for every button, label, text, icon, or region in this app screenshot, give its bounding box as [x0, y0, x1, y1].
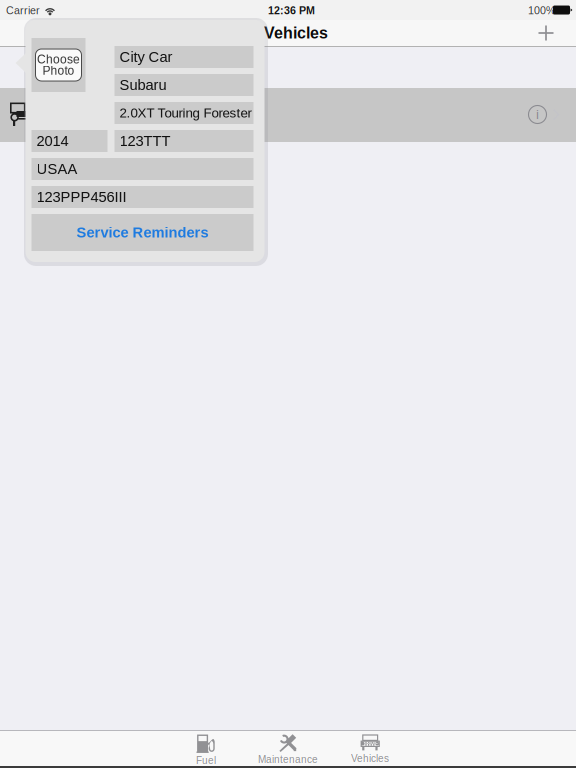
staticText: Fuel — [196, 755, 216, 766]
button[interactable]: Maintenance — [247, 731, 329, 766]
button[interactable]: Fuel — [165, 731, 247, 766]
staticText: Choose — [37, 53, 80, 66]
staticText: 100% — [528, 4, 555, 16]
staticText: 2.0XT Touring Forester — [119, 106, 251, 120]
staticText: City Car — [119, 49, 172, 65]
staticText: Vehicles — [264, 24, 328, 42]
staticText: Carrier — [6, 4, 40, 16]
button[interactable]: Service Reminders — [31, 214, 253, 251]
staticText: 123PPP456III — [36, 189, 126, 205]
button[interactable]: City Car — [0, 88, 576, 142]
staticText: 123TTT — [119, 133, 170, 149]
button[interactable]: Add vehicle — [524, 19, 568, 46]
button[interactable]: Choose — [35, 49, 81, 81]
staticText: Service Reminders — [76, 224, 208, 241]
staticText: 2014 — [36, 133, 68, 149]
staticText: 12:36 PM — [268, 4, 315, 16]
staticText: Photo — [42, 64, 74, 77]
button[interactable]: Vehicles — [329, 731, 411, 766]
staticText: Subaru — [119, 77, 166, 93]
staticText: Vehicles — [351, 753, 389, 764]
staticText: USAA — [36, 161, 77, 177]
staticText: Maintenance — [258, 754, 318, 765]
staticText: i — [536, 107, 539, 122]
